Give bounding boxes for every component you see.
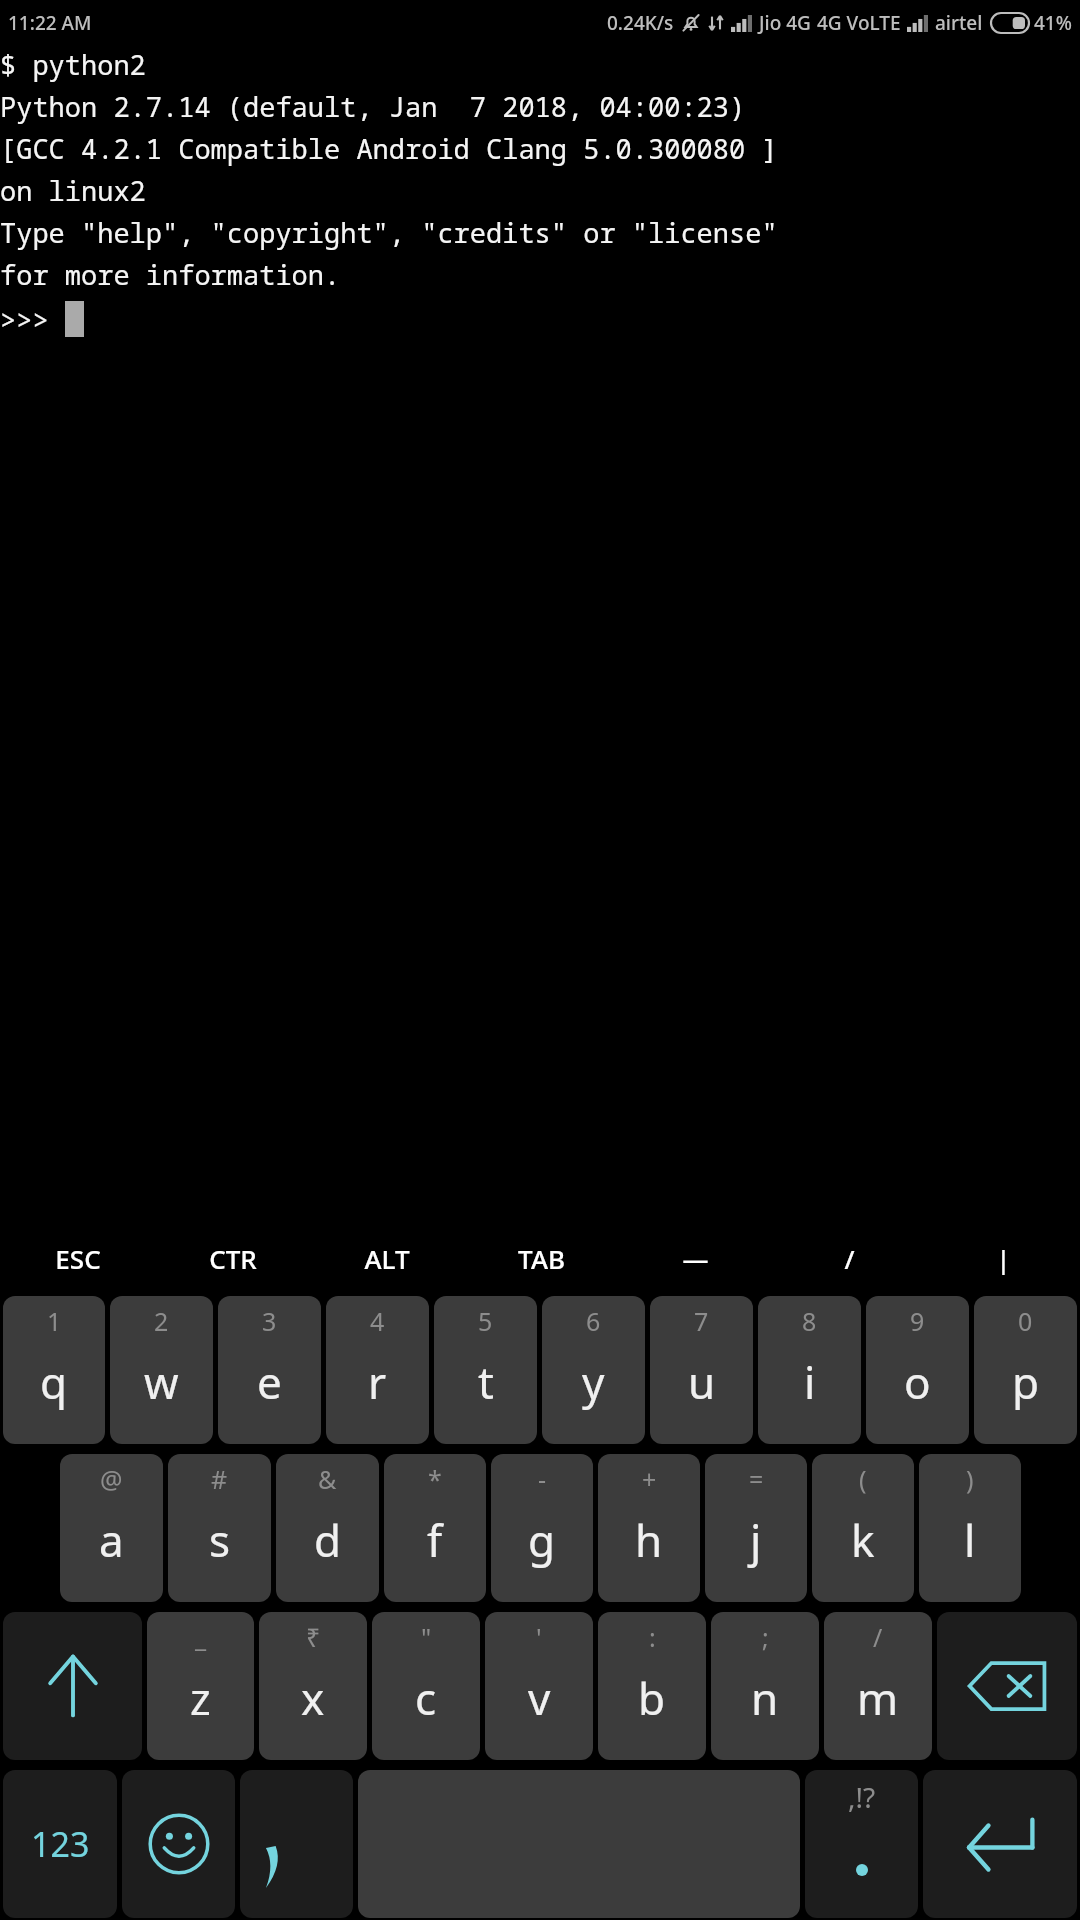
staticText: $ python2 <box>0 46 146 88</box>
staticText: z <box>190 1668 211 1728</box>
button[interactable]: 1 <box>3 1296 105 1444</box>
staticText: j <box>750 1510 762 1570</box>
button[interactable]: Period <box>805 1770 918 1918</box>
staticText: Type "help", "copyright", "credits" or "… <box>0 214 778 256</box>
staticText: 6 <box>586 1304 601 1338</box>
staticText: 123 <box>31 1821 90 1867</box>
button[interactable]: ( <box>812 1454 914 1602</box>
staticText: 3 <box>262 1304 277 1338</box>
staticText: @ <box>100 1462 123 1496</box>
staticText: CTR <box>209 1241 257 1276</box>
button[interactable]: ₹ <box>259 1612 367 1760</box>
staticText: 1 <box>47 1304 62 1338</box>
staticText: p <box>1012 1352 1040 1412</box>
staticText: i <box>804 1352 816 1412</box>
staticText: v <box>528 1668 551 1728</box>
staticText: / <box>873 1620 883 1654</box>
staticText: g <box>528 1510 556 1570</box>
button[interactable]: Shift <box>3 1612 142 1760</box>
button[interactable]: ' <box>485 1612 593 1760</box>
staticText: 41% <box>1034 10 1072 36</box>
button[interactable]: 0 <box>974 1296 1077 1444</box>
staticText: on linux2 <box>0 172 146 214</box>
staticText: = <box>749 1462 764 1496</box>
staticText: x <box>301 1668 325 1728</box>
staticText: r <box>368 1352 387 1412</box>
button[interactable]: — <box>618 1220 772 1296</box>
staticText: _ <box>195 1620 207 1654</box>
button[interactable]: 5 <box>434 1296 537 1444</box>
staticText: n <box>751 1668 779 1728</box>
staticText: 5 <box>478 1304 493 1338</box>
staticText: # <box>211 1462 228 1496</box>
button[interactable]: " <box>372 1612 480 1760</box>
button[interactable]: CTR <box>155 1220 310 1296</box>
staticText: w <box>144 1352 179 1412</box>
button[interactable]: ESC <box>0 1220 155 1296</box>
button[interactable]: : <box>598 1612 706 1760</box>
staticText: Jio 4G <box>759 10 811 36</box>
staticText: u <box>688 1352 716 1412</box>
button[interactable]: ; <box>711 1612 819 1760</box>
staticText: 9 <box>910 1304 925 1338</box>
button[interactable]: 9 <box>866 1296 969 1444</box>
staticText: + <box>642 1462 657 1496</box>
staticText: ( <box>859 1462 867 1496</box>
staticText: 0.24K/s <box>607 10 674 36</box>
staticText: | <box>996 1241 1011 1276</box>
staticText: ALT <box>364 1241 410 1276</box>
button[interactable]: 4 <box>326 1296 429 1444</box>
button[interactable]: / <box>824 1612 932 1760</box>
button[interactable]: | <box>926 1220 1080 1296</box>
staticText: 4 <box>370 1304 385 1338</box>
button[interactable]: TAB <box>464 1220 618 1296</box>
staticText: >>> <box>0 301 65 338</box>
staticText: TAB <box>518 1241 565 1276</box>
button[interactable]: Enter <box>923 1770 1077 1918</box>
staticText: b <box>638 1668 666 1728</box>
button[interactable]: & <box>276 1454 379 1602</box>
button[interactable]: / <box>772 1220 926 1296</box>
staticText: [GCC 4.2.1 Compatible Android Clang 5.0.… <box>0 130 778 172</box>
staticText: m <box>857 1668 899 1728</box>
button[interactable]: 8 <box>758 1296 861 1444</box>
staticText: Python 2.7.14 (default, Jan 7 2018, 04:0… <box>0 88 746 130</box>
button[interactable]: * <box>384 1454 486 1602</box>
staticText: for more information. <box>0 256 341 298</box>
button[interactable]: 7 <box>650 1296 753 1444</box>
staticText: / <box>844 1241 855 1276</box>
staticText: k <box>851 1510 875 1570</box>
button[interactable]: 6 <box>542 1296 645 1444</box>
staticText: 4G VoLTE <box>817 10 901 36</box>
button[interactable]: ) <box>919 1454 1021 1602</box>
staticText: q <box>40 1352 68 1412</box>
staticText: f <box>427 1510 443 1570</box>
button[interactable]: Emoji <box>122 1770 235 1918</box>
button[interactable]: - <box>491 1454 593 1602</box>
staticText: o <box>904 1352 931 1412</box>
staticText: 2 <box>154 1304 169 1338</box>
staticText: l <box>964 1510 976 1570</box>
staticText: t <box>478 1352 494 1412</box>
staticText: e <box>257 1352 282 1412</box>
staticText: 8 <box>802 1304 817 1338</box>
button[interactable]: @ <box>60 1454 163 1602</box>
button[interactable]: _ <box>147 1612 254 1760</box>
button[interactable]: = <box>705 1454 807 1602</box>
button[interactable]: + <box>598 1454 700 1602</box>
button[interactable]: Comma <box>240 1770 353 1918</box>
button[interactable]: # <box>168 1454 271 1602</box>
button[interactable]: ALT <box>310 1220 464 1296</box>
button[interactable]: 3 <box>218 1296 321 1444</box>
button[interactable]: Backspace <box>937 1612 1077 1760</box>
staticText: — <box>682 1241 709 1276</box>
staticText: " <box>421 1620 432 1654</box>
staticText: ) <box>966 1462 974 1496</box>
staticText: - <box>538 1462 547 1496</box>
staticText: s <box>209 1510 231 1570</box>
staticText: y <box>582 1352 605 1412</box>
button[interactable]: 2 <box>110 1296 213 1444</box>
staticText: 11:22 AM <box>8 10 92 36</box>
button[interactable]: Symbols <box>3 1770 117 1918</box>
